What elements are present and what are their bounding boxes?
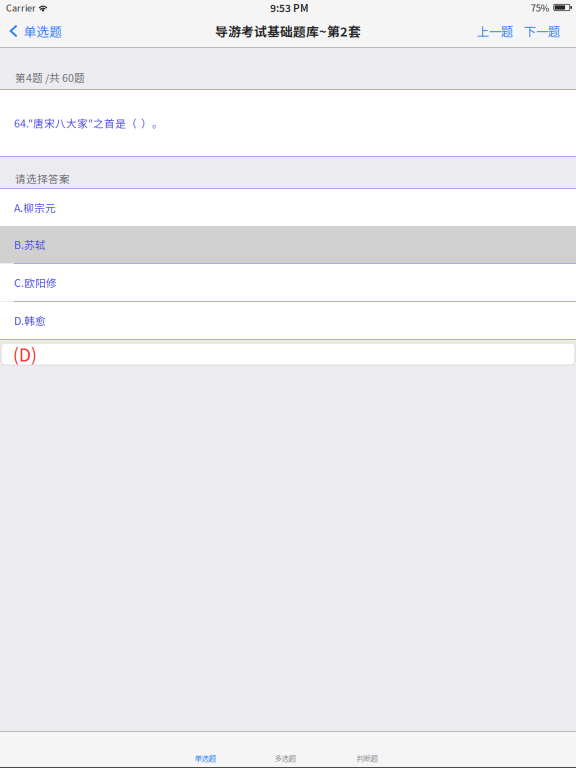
staticText: 下一题 [524, 22, 560, 40]
button[interactable]: 多选题 [274, 748, 296, 768]
button[interactable]: C.欧阳修 [0, 264, 576, 301]
staticText: A.柳宗元 [14, 200, 56, 215]
staticText: 请选择答案 [15, 171, 70, 186]
button[interactable]: (D) [0, 340, 576, 367]
staticText: 64."唐宋八大家"之首是（ ）。 [14, 115, 163, 131]
staticText: 单选题 [23, 22, 62, 40]
button[interactable]: B.苏轼 [0, 226, 576, 263]
staticText: D.韩愈 [14, 313, 46, 328]
staticText: 上一题 [477, 22, 513, 40]
button[interactable]: 判断题 [356, 748, 378, 768]
button[interactable]: 上一题 [473, 15, 517, 47]
staticText: 第4题 /共 60题 [15, 70, 85, 85]
staticText: 单选题 [194, 753, 215, 763]
button[interactable]: 下一题 [520, 15, 564, 47]
button[interactable]: D.韩愈 [0, 302, 576, 339]
staticText: 75% [531, 1, 550, 14]
button[interactable]: 单选题 [194, 748, 216, 768]
staticText: 判断题 [356, 753, 377, 763]
staticText: (D) [13, 341, 37, 367]
staticText: 导游考试基础题库~第2套 [215, 22, 361, 40]
staticText: Carrier [6, 1, 36, 14]
staticText: C.欧阳修 [14, 275, 57, 290]
staticText: 9:53 PM [270, 0, 309, 15]
button[interactable]: 单选题 [0, 15, 70, 47]
staticText: B.苏轼 [14, 237, 46, 252]
button[interactable]: A.柳宗元 [0, 189, 576, 226]
staticText: 多选题 [274, 753, 295, 763]
